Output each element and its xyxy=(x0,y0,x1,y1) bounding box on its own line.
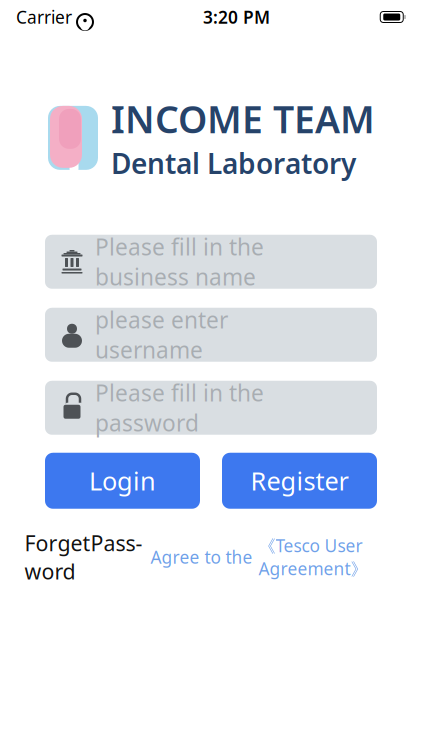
staticText: 3:20 PM xyxy=(203,5,270,28)
button[interactable]: ForgetPassword xyxy=(24,529,142,585)
button[interactable]: Register xyxy=(222,453,377,509)
staticText: please enter username xyxy=(95,305,228,365)
staticText: ForgetPassword xyxy=(24,529,142,585)
staticText: Please fill in the business name xyxy=(95,232,264,292)
staticText: Login xyxy=(89,464,156,497)
button[interactable]: 《Tesco User Agreement》 xyxy=(258,534,367,580)
staticText: Agree to the xyxy=(150,546,252,569)
button[interactable]: Please fill in the business name xyxy=(45,235,377,289)
button[interactable]: Login xyxy=(45,453,200,509)
staticText: 《Tesco User Agreement》 xyxy=(258,534,367,580)
staticText: INCOME TEAM xyxy=(111,94,375,144)
staticText: Dental Laboratory xyxy=(111,145,356,182)
staticText: Register xyxy=(250,464,348,497)
button[interactable]: Please fill in the password xyxy=(45,381,377,435)
button[interactable]: please enter username xyxy=(45,308,377,362)
staticText: Carrier xyxy=(16,5,72,28)
staticText: Please fill in the password xyxy=(95,378,264,438)
